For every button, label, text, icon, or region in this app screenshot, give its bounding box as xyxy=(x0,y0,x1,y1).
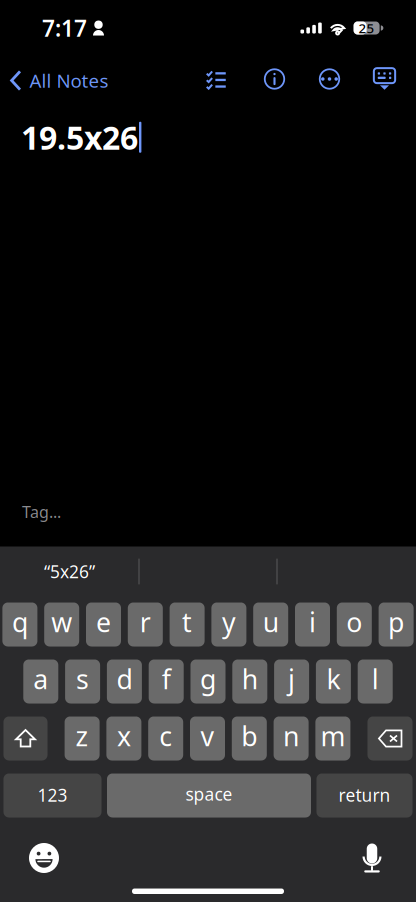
button[interactable]: i xyxy=(295,602,330,646)
staticText: 7:17 xyxy=(42,13,87,43)
staticText: e xyxy=(96,604,111,640)
staticText: c xyxy=(159,718,172,754)
button[interactable]: g xyxy=(190,659,225,703)
staticText: j xyxy=(288,661,295,697)
button[interactable]: Checklist xyxy=(185,59,247,99)
button[interactable]: d xyxy=(107,659,142,703)
button[interactable]: Dictate xyxy=(349,835,395,881)
button[interactable]: s xyxy=(65,659,100,703)
button[interactable]: t xyxy=(170,602,205,646)
staticText: t xyxy=(182,604,192,640)
button[interactable]: l xyxy=(358,659,393,703)
staticText: w xyxy=(51,604,72,640)
button[interactable]: j xyxy=(274,659,309,703)
staticText: “5x26” xyxy=(44,560,95,583)
button[interactable]: Emoji xyxy=(21,835,67,881)
button[interactable]: b xyxy=(232,716,267,760)
staticText: 123 xyxy=(37,783,67,806)
staticText: i xyxy=(309,604,316,640)
button[interactable]: u xyxy=(253,602,288,646)
button[interactable]: v xyxy=(190,716,225,760)
staticText: u xyxy=(263,604,279,640)
staticText: g xyxy=(200,661,216,697)
button[interactable]: n xyxy=(274,716,309,760)
button[interactable]: f xyxy=(149,659,184,703)
button[interactable]: Delete xyxy=(367,716,412,760)
staticText: a xyxy=(33,661,48,697)
staticText: h xyxy=(242,661,258,697)
staticText: 19.5x26 xyxy=(21,116,138,158)
staticText: z xyxy=(76,718,89,754)
button[interactable]: k xyxy=(316,659,351,703)
button[interactable]: Shift xyxy=(3,716,47,760)
staticText: y xyxy=(222,604,236,640)
button[interactable]: a xyxy=(23,659,58,703)
staticText: b xyxy=(241,718,257,754)
button[interactable]: All Notes xyxy=(0,60,108,98)
staticText: q xyxy=(12,604,28,640)
button[interactable]: c xyxy=(148,716,183,760)
button[interactable]: Hide Keyboard xyxy=(357,59,412,99)
staticText: Tag... xyxy=(22,501,61,522)
staticText: m xyxy=(320,718,345,754)
button[interactable]: q xyxy=(2,602,37,646)
staticText: d xyxy=(116,661,132,697)
button[interactable]: z xyxy=(65,716,100,760)
staticText: p xyxy=(388,604,404,640)
button[interactable]: h xyxy=(232,659,267,703)
staticText: return xyxy=(338,783,390,806)
staticText: r xyxy=(140,604,151,640)
button[interactable]: return xyxy=(316,773,412,817)
button[interactable]: 123 xyxy=(3,773,101,817)
button[interactable]: o xyxy=(337,602,372,646)
staticText: k xyxy=(326,661,340,697)
staticText: x xyxy=(117,718,131,754)
staticText: f xyxy=(162,661,171,697)
button[interactable]: m xyxy=(315,716,350,760)
button[interactable]: space xyxy=(107,773,311,817)
staticText: v xyxy=(200,718,214,754)
button[interactable]: y xyxy=(211,602,246,646)
button[interactable]: r xyxy=(128,602,163,646)
button[interactable]: Info xyxy=(247,59,302,99)
button[interactable]: e xyxy=(86,602,121,646)
staticText: space xyxy=(185,782,232,805)
button[interactable]: x xyxy=(106,716,141,760)
staticText: n xyxy=(283,718,299,754)
staticText: o xyxy=(346,604,362,640)
button[interactable]: “5x26” xyxy=(0,549,138,593)
staticText: l xyxy=(372,661,379,697)
staticText: s xyxy=(76,661,89,697)
button[interactable]: w xyxy=(44,602,79,646)
button[interactable]: p xyxy=(379,602,414,646)
button[interactable]: More xyxy=(302,59,357,99)
staticText: All Notes xyxy=(29,68,108,93)
staticText: 25 xyxy=(359,19,375,37)
